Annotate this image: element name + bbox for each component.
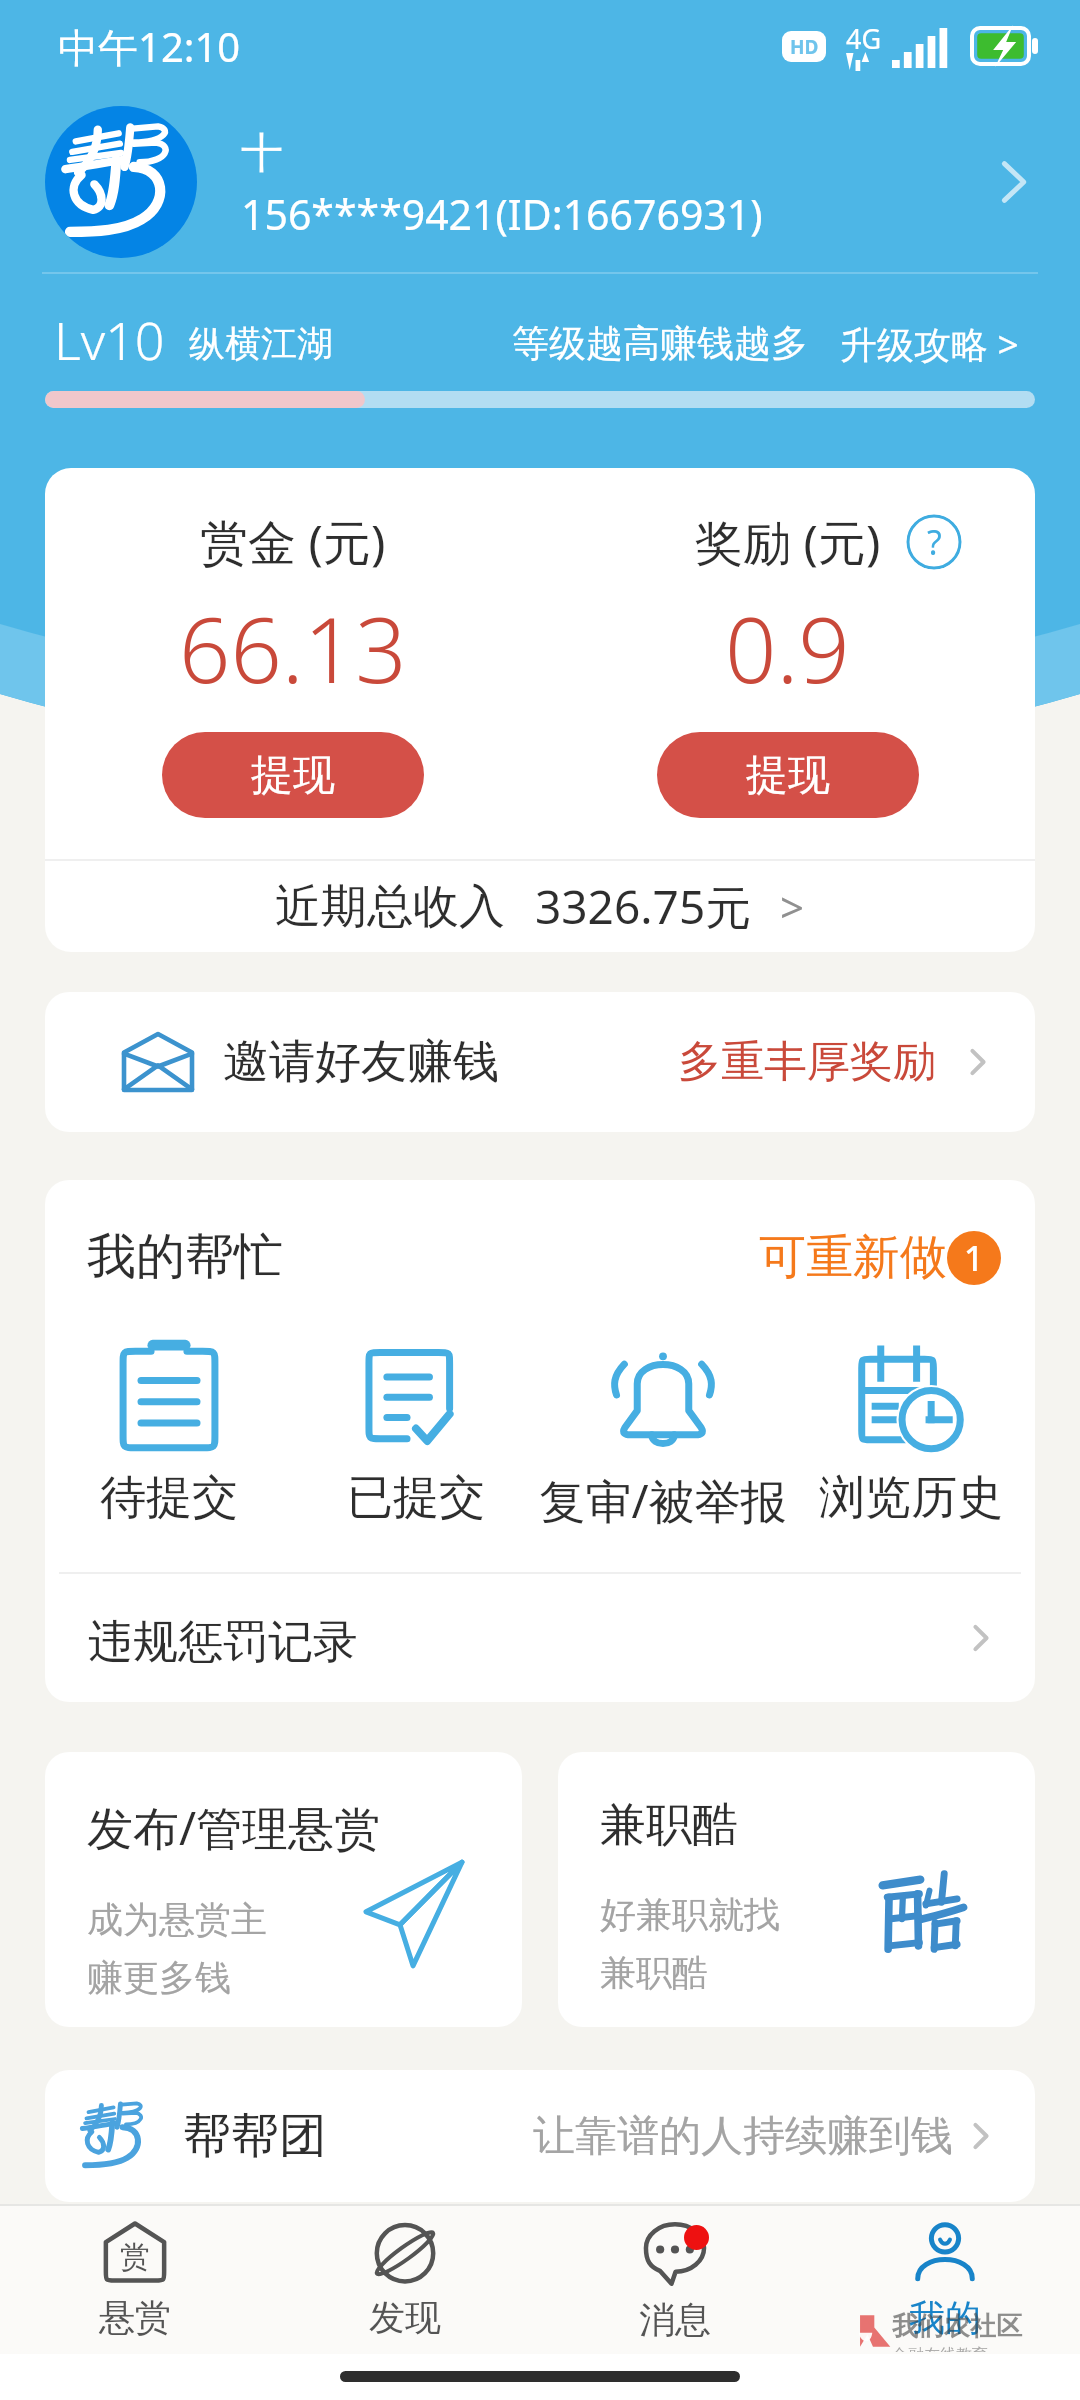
staticText: 复审/被举报 [539, 1469, 787, 1532]
staticText: 悬赏 [99, 2295, 171, 2340]
button[interactable]: 复审/被举报 [539, 1339, 787, 1532]
staticText: 4G [846, 20, 882, 57]
button[interactable]: Help [906, 514, 962, 570]
staticText: 中午12:10 [58, 19, 241, 74]
button[interactable]: 等级越高赚钱越多 [512, 316, 1019, 367]
button[interactable]: 十 [0, 92, 1080, 272]
button[interactable]: 提现 [162, 732, 424, 818]
staticText: 赚更多钱 [87, 1955, 231, 2000]
staticText: 156****9421(ID:16676931) [241, 186, 763, 242]
staticText: 3326.75元 [535, 875, 752, 938]
button[interactable]: 帮帮团 [45, 2070, 1035, 2202]
staticText: 邀请好友赚钱 [223, 1033, 499, 1091]
button[interactable]: 可重新做 [759, 1228, 1001, 1287]
button[interactable]: 邀请好友赚钱 [45, 992, 1035, 1132]
button[interactable]: 浏览历史 [787, 1339, 1035, 1527]
staticText: Lv10 [54, 304, 165, 375]
staticText: 纵横江湖 [189, 321, 333, 366]
staticText: > [780, 878, 805, 935]
staticText: 我的 [909, 2295, 981, 2340]
staticText: 可重新做 [759, 1228, 947, 1287]
button[interactable]: 违规惩罚记录 [45, 1574, 1035, 1702]
staticText: 奖励 (元) [695, 509, 881, 575]
staticText: 0.9 [725, 587, 850, 710]
staticText: 已提交 [347, 1469, 485, 1527]
button[interactable]: 消息 [540, 2219, 810, 2342]
staticText: 我们农社区 [892, 2310, 1022, 2343]
button[interactable]: 待提交 [45, 1339, 292, 1527]
staticText: 让靠谱的人持续赚到钱 [533, 2110, 953, 2163]
staticText: 66.13 [179, 587, 407, 710]
staticText: 近期总收入 [275, 878, 505, 936]
staticText: 等级越高赚钱越多 [512, 320, 808, 367]
staticText: 帮帮团 [183, 2106, 327, 2166]
staticText: 提现 [251, 749, 335, 802]
staticText: 好兼职就找 [600, 1892, 780, 1937]
button[interactable]: 我的 [810, 2221, 1080, 2340]
staticText: 兼职酷 [600, 1796, 738, 1854]
staticText: 我的帮忙 [87, 1226, 283, 1288]
staticText: 浏览历史 [819, 1469, 1003, 1527]
staticText: 赏 [120, 2238, 150, 2276]
staticText: ? [927, 519, 942, 565]
button[interactable]: 已提交 [292, 1339, 539, 1527]
button[interactable]: 兼职酷 [558, 1752, 1035, 2027]
staticText: 成为悬赏主 [87, 1897, 267, 1942]
staticText: 消息 [639, 2297, 711, 2342]
staticText: 发布/管理悬赏 [87, 1796, 381, 1859]
staticText: HD [790, 34, 819, 60]
button[interactable]: 近期总收入 [45, 861, 1035, 952]
staticText: 待提交 [100, 1469, 238, 1527]
staticText: 提现 [746, 749, 830, 802]
button[interactable]: 发布/管理悬赏 [45, 1752, 522, 2027]
staticText: 升级攻略 > [840, 318, 1019, 369]
staticText: 1 [964, 1235, 984, 1281]
staticText: 兼职酷 [600, 1950, 708, 1995]
button[interactable]: 提现 [657, 732, 919, 818]
staticText: 金融在线教育 [892, 2345, 988, 2352]
staticText: 十 [241, 127, 283, 180]
staticText: 赏金 (元) [200, 509, 386, 575]
staticText: 多重丰厚奖励 [678, 1035, 936, 1089]
staticText: 发现 [369, 2295, 441, 2340]
button[interactable]: 发现 [270, 2221, 540, 2340]
staticText: 违规惩罚记录 [88, 1614, 358, 1671]
other: Account details [986, 155, 1040, 209]
button[interactable]: 赏 [0, 2221, 270, 2340]
